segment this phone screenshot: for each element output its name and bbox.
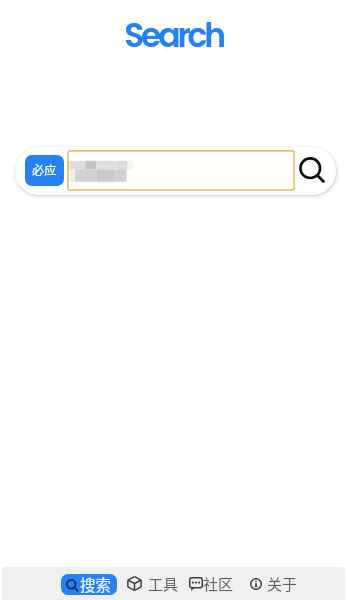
button[interactable]	[67, 150, 295, 191]
staticText: Search	[0, 12, 347, 58]
button[interactable]: Search	[298, 154, 334, 190]
staticText: 关于	[267, 573, 298, 595]
staticText: 必应	[32, 161, 57, 178]
button[interactable]: 必应	[15, 147, 336, 195]
button[interactable]: 搜索	[61, 574, 117, 595]
staticText: 搜索	[80, 574, 112, 594]
staticText: 社区	[203, 573, 234, 595]
button[interactable]: 社区	[186, 570, 238, 597]
button[interactable]: 工具	[124, 570, 183, 597]
staticText: 工具	[148, 573, 179, 595]
button[interactable]: 必应	[25, 155, 64, 186]
button[interactable]: 关于	[247, 570, 302, 597]
